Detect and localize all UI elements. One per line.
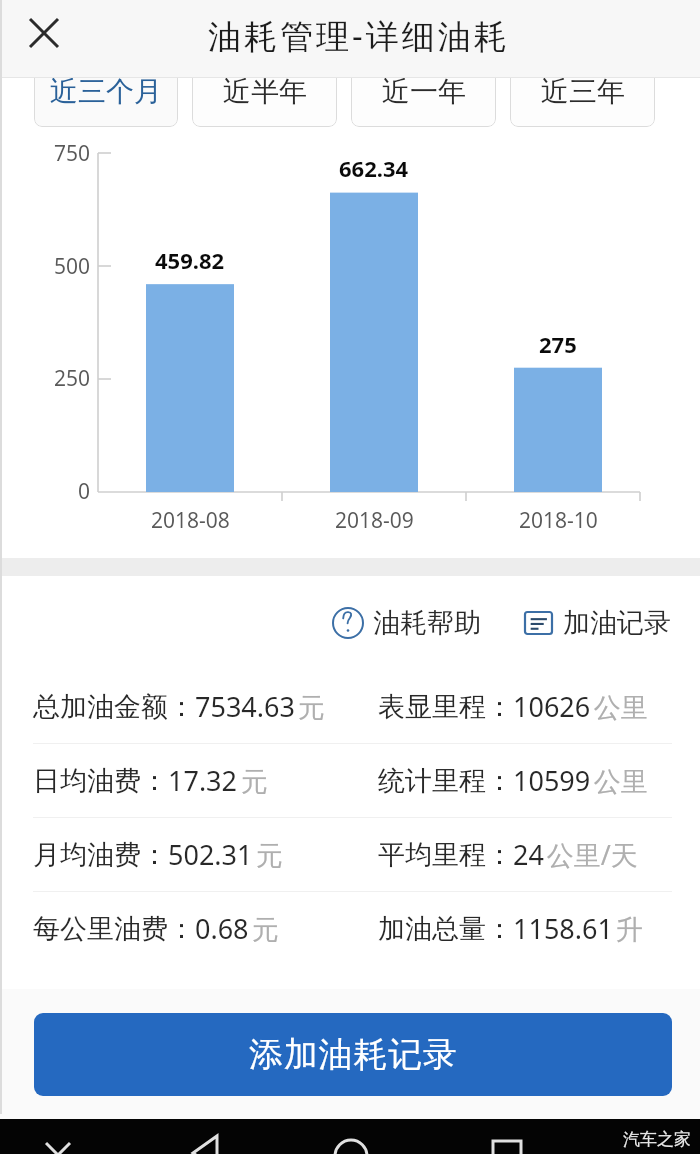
staticText: 加油记录 [563,606,671,640]
button[interactable]: 近半年 [192,78,337,127]
staticText: 近一年 [382,78,466,109]
staticText: 平均里程： [378,838,513,872]
staticText: 总加油金额： [33,690,195,724]
staticText: 1158.61 [513,910,613,947]
button[interactable]: Back [185,1133,229,1154]
staticText: 元 [253,836,283,873]
staticText: 662.34 [339,153,409,183]
staticText: 元 [249,910,279,947]
staticText: 17.32 [168,762,238,799]
staticText: 添加油耗记录 [249,1033,458,1076]
staticText: 升 [613,910,643,947]
staticText: 750 [54,139,91,168]
button[interactable]: Recents [485,1133,529,1154]
staticText: 公里 [591,688,648,725]
staticText: 24 [513,836,544,873]
staticText: 近三年 [541,78,625,109]
staticText: 500 [54,252,91,281]
staticText: 元 [295,688,325,725]
button[interactable]: 添加油耗记录 [34,1013,672,1096]
staticText: 汽车之家 [623,1129,691,1150]
staticText: 2018-08 [151,506,230,535]
button[interactable]: Close [16,5,72,61]
staticText: 0 [78,477,91,506]
staticText: 统计里程： [378,764,513,798]
staticText: 油耗管理-详细油耗 [208,13,510,58]
staticText: 275 [539,329,577,359]
staticText: 0.68 [195,910,249,947]
button[interactable]: Home [329,1133,373,1154]
button[interactable]: 每公里油费： [0,892,700,965]
staticText: 250 [54,364,91,393]
button[interactable]: 加油记录 [521,598,674,648]
button[interactable]: 近三个月 [34,78,178,127]
staticText: 加油总量： [378,912,513,946]
staticText: 459.82 [155,245,225,275]
staticText: 每公里油费： [33,912,195,946]
staticText: 油耗帮助 [373,606,481,640]
button[interactable]: 总加油金额： [0,670,700,743]
button[interactable]: 近一年 [351,78,496,127]
staticText: 10599 [513,762,591,799]
staticText: 近半年 [223,78,307,109]
staticText: 7534.63 [195,688,295,725]
staticText: 日均油费： [33,764,168,798]
staticText: 502.31 [168,836,253,873]
staticText: 表显里程： [378,690,513,724]
button[interactable]: 近三年 [510,78,655,127]
button[interactable]: 油耗帮助 [329,598,484,648]
staticText: 公里 [591,762,648,799]
staticText: 近三个月 [50,78,162,109]
button[interactable]: Hide keyboard [36,1133,80,1154]
staticText: 2018-10 [519,506,598,535]
button[interactable]: 月均油费： [0,818,700,891]
staticText: 月均油费： [33,838,168,872]
staticText: 2018-09 [335,506,414,535]
staticText: 10626 [513,688,591,725]
staticText: 公里/天 [544,836,638,873]
button[interactable]: 日均油费： [0,744,700,817]
staticText: 元 [238,762,268,799]
